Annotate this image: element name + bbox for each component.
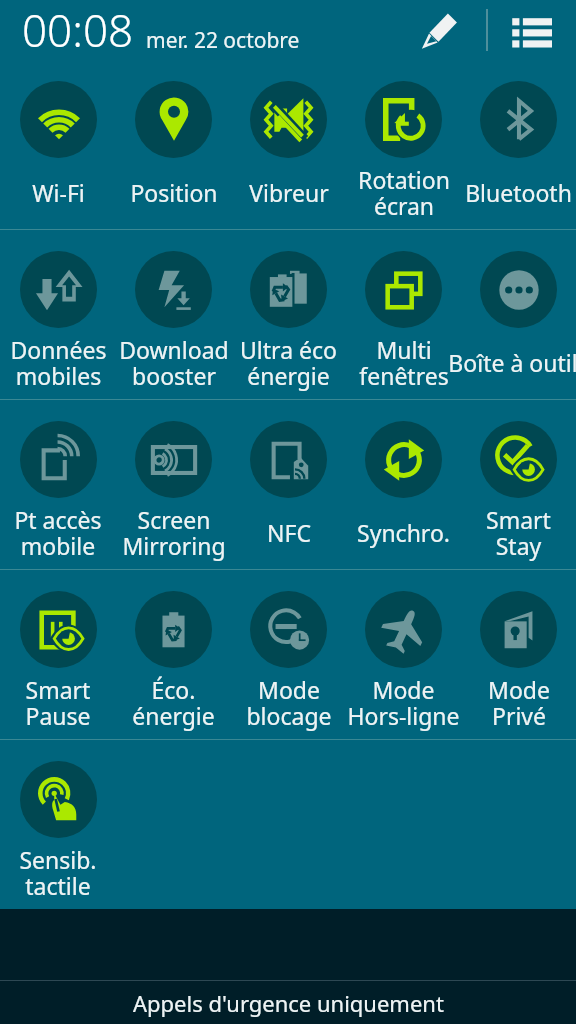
staticText: Boîte à outils bbox=[448, 347, 576, 378]
staticText: mer. 22 octobre bbox=[146, 26, 300, 55]
staticText: NFC bbox=[267, 517, 311, 548]
staticText: Mode Hors-ligne bbox=[347, 674, 460, 732]
staticText: Pt accès mobile bbox=[14, 504, 102, 562]
button[interactable]: Vibreur bbox=[231, 60, 346, 229]
button[interactable]: Bluetooth bbox=[461, 60, 576, 229]
button[interactable]: Sensib. tactile bbox=[0, 740, 116, 909]
staticText: Données mobiles bbox=[10, 334, 107, 392]
button[interactable]: Download booster bbox=[116, 230, 231, 399]
button[interactable]: Appels d'urgence uniquement bbox=[0, 981, 576, 1024]
staticText: Mode blocage bbox=[246, 674, 332, 732]
button[interactable]: Boîte à outils bbox=[461, 230, 576, 399]
button[interactable]: Multi fenêtres bbox=[346, 230, 461, 399]
staticText: 00:08 bbox=[22, 0, 134, 60]
staticText: Vibreur bbox=[249, 177, 329, 208]
button[interactable]: Rotation écran bbox=[346, 60, 461, 229]
staticText: Rotation écran bbox=[358, 164, 450, 222]
button[interactable]: Wi-Fi bbox=[0, 60, 116, 229]
staticText: Multi fenêtres bbox=[359, 334, 449, 392]
button[interactable]: Mode Privé bbox=[461, 570, 576, 739]
button[interactable]: NFC bbox=[231, 400, 346, 569]
staticText: Download booster bbox=[119, 334, 229, 392]
button[interactable]: Show list bbox=[502, 1, 560, 59]
staticText: Smart Stay bbox=[486, 504, 551, 562]
button[interactable]: Pt accès mobile bbox=[0, 400, 116, 569]
button[interactable]: Smart Stay bbox=[461, 400, 576, 569]
staticText: Synchro. bbox=[357, 517, 450, 548]
button[interactable]: Smart Pause bbox=[0, 570, 116, 739]
button[interactable]: Mode Hors-ligne bbox=[346, 570, 461, 739]
staticText: Screen Mirroring bbox=[122, 504, 226, 562]
button[interactable]: Données mobiles bbox=[0, 230, 116, 399]
staticText: Appels d'urgence uniquement bbox=[133, 988, 444, 1018]
staticText: Wi-Fi bbox=[32, 177, 85, 208]
button[interactable]: Ultra éco énergie bbox=[231, 230, 346, 399]
staticText: Position bbox=[130, 177, 218, 208]
staticText: Sensib. tactile bbox=[19, 844, 97, 902]
staticText: Ultra éco énergie bbox=[240, 334, 337, 392]
button[interactable]: Éco. énergie bbox=[116, 570, 231, 739]
button[interactable]: Screen Mirroring bbox=[116, 400, 231, 569]
button[interactable]: Position bbox=[116, 60, 231, 229]
button[interactable]: Mode blocage bbox=[231, 570, 346, 739]
staticText: Mode Privé bbox=[488, 674, 550, 732]
button[interactable]: Edit quick settings bbox=[410, 1, 468, 59]
staticText: Éco. énergie bbox=[132, 674, 215, 732]
button[interactable]: Synchro. bbox=[346, 400, 461, 569]
staticText: Smart Pause bbox=[25, 674, 91, 732]
staticText: Bluetooth bbox=[465, 177, 572, 208]
